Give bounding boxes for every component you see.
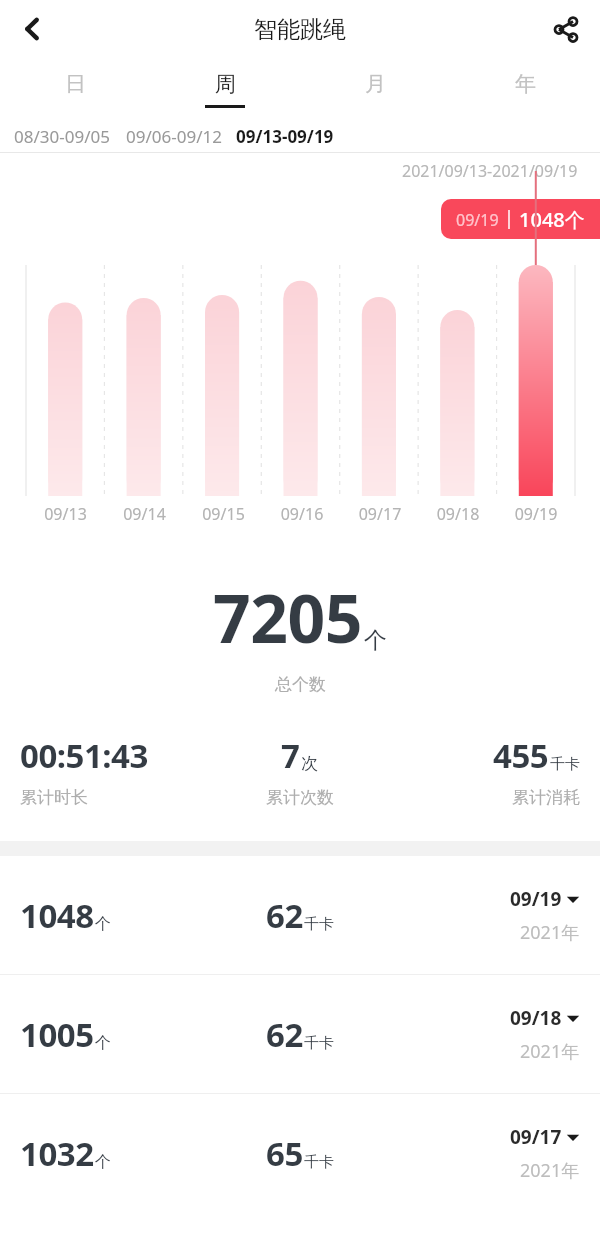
staticText: 个: [95, 914, 111, 934]
staticText: 1032: [20, 1131, 94, 1176]
staticText: 2021年: [520, 1039, 580, 1064]
button[interactable]: Share: [540, 3, 592, 55]
staticText: 总个数: [275, 674, 326, 695]
staticText: 年: [515, 71, 536, 97]
staticText: 09/17: [341, 503, 419, 525]
staticText: 智能跳绳: [254, 15, 346, 44]
staticText: 09/13: [26, 503, 105, 525]
staticText: 09/16: [263, 503, 341, 525]
staticText: 次: [301, 753, 318, 774]
staticText: 1048: [20, 893, 94, 938]
staticText: 千卡: [304, 915, 334, 934]
button[interactable]: 周: [150, 58, 300, 120]
staticText: 09/19: [510, 886, 562, 912]
staticText: 09/18: [510, 1005, 562, 1031]
button[interactable]: 09/19: [456, 199, 585, 239]
button[interactable]: 月: [300, 58, 450, 120]
staticText: 7: [281, 733, 300, 778]
staticText: 2021/09/13-2021/09/19: [402, 160, 578, 182]
staticText: 2021年: [520, 920, 580, 945]
button[interactable]: 1005: [0, 975, 600, 1093]
staticText: 个: [95, 1152, 111, 1172]
staticText: 累计时长: [20, 787, 88, 808]
staticText: 62: [266, 893, 303, 938]
staticText: 累计消耗: [512, 787, 580, 808]
staticText: 周: [215, 71, 236, 97]
staticText: 09/19: [497, 503, 575, 525]
staticText: 月: [365, 71, 386, 97]
staticText: 2021年: [520, 1158, 580, 1183]
staticText: 千卡: [304, 1034, 334, 1053]
button[interactable]: 日: [0, 58, 150, 120]
button[interactable]: Back: [6, 3, 58, 55]
staticText: 09/17: [510, 1124, 562, 1150]
button[interactable]: 年: [450, 58, 600, 120]
staticText: 09/18: [419, 503, 497, 525]
staticText: 62: [266, 1012, 303, 1057]
staticText: 00:51:43: [20, 733, 148, 778]
button[interactable]: 09/06-09/12: [126, 125, 222, 148]
button[interactable]: 08/30-09/05: [14, 125, 110, 148]
staticText: 455: [493, 733, 549, 778]
button[interactable]: 09/13-09/19: [236, 125, 334, 148]
staticText: 65: [266, 1131, 303, 1176]
staticText: 个: [95, 1033, 111, 1053]
button[interactable]: 1048: [0, 856, 600, 974]
staticText: 千卡: [304, 1153, 334, 1172]
staticText: 09/15: [184, 503, 263, 525]
staticText: 日: [65, 71, 86, 97]
staticText: 7205: [213, 572, 363, 662]
staticText: 个: [364, 626, 387, 655]
staticText: 09/19: [456, 209, 499, 231]
staticText: 千卡: [550, 755, 580, 774]
button[interactable]: 1032: [0, 1094, 600, 1212]
staticText: 09/14: [105, 503, 184, 525]
staticText: 累计次数: [266, 787, 334, 808]
staticText: 1005: [20, 1012, 94, 1057]
staticText: 1048个: [519, 206, 585, 233]
